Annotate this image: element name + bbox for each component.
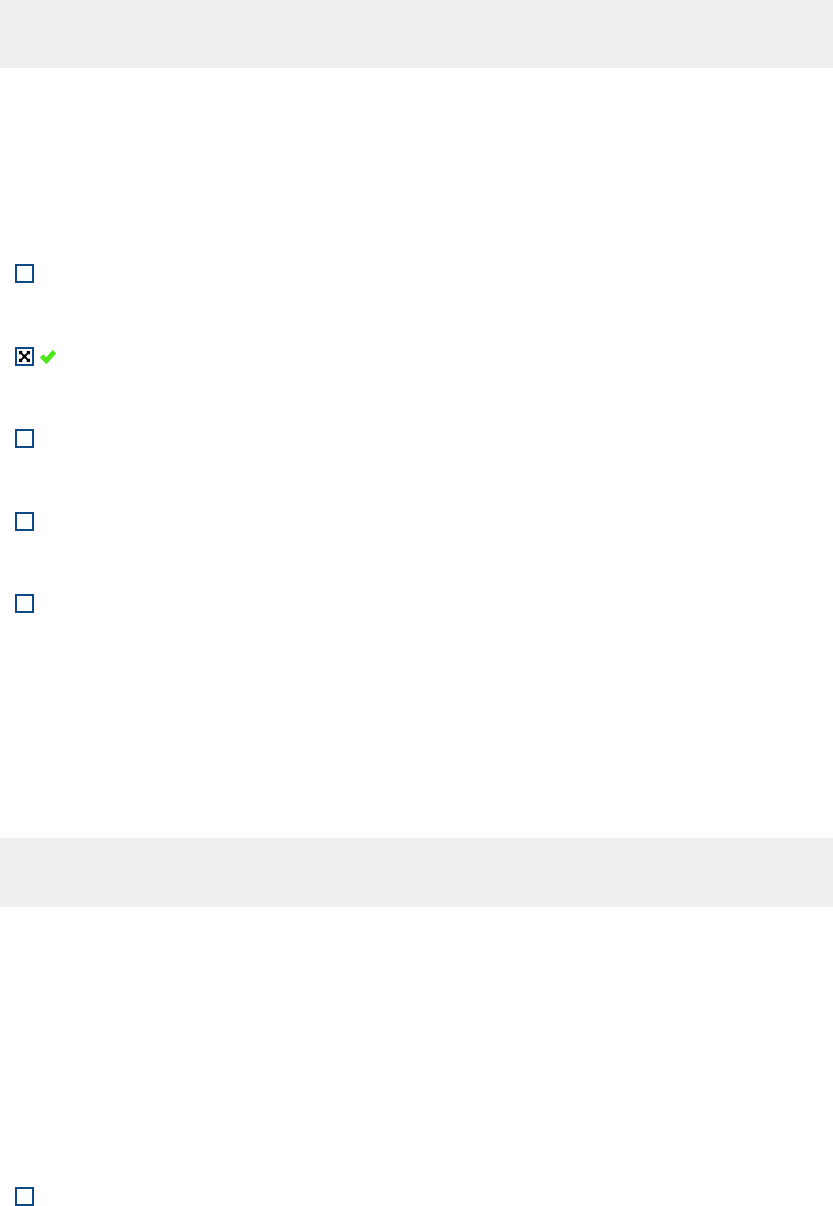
button[interactable]: Image placeholder 2	[15, 429, 34, 448]
button[interactable]: Image placeholder 4	[15, 594, 34, 613]
button[interactable]: Image placeholder 1	[15, 264, 34, 283]
button[interactable]: Image placeholder 3	[15, 512, 34, 531]
button[interactable]: Broken image	[15, 347, 34, 366]
button[interactable]: Image placeholder 5	[15, 1187, 34, 1206]
button[interactable]: Verified	[40, 349, 56, 364]
